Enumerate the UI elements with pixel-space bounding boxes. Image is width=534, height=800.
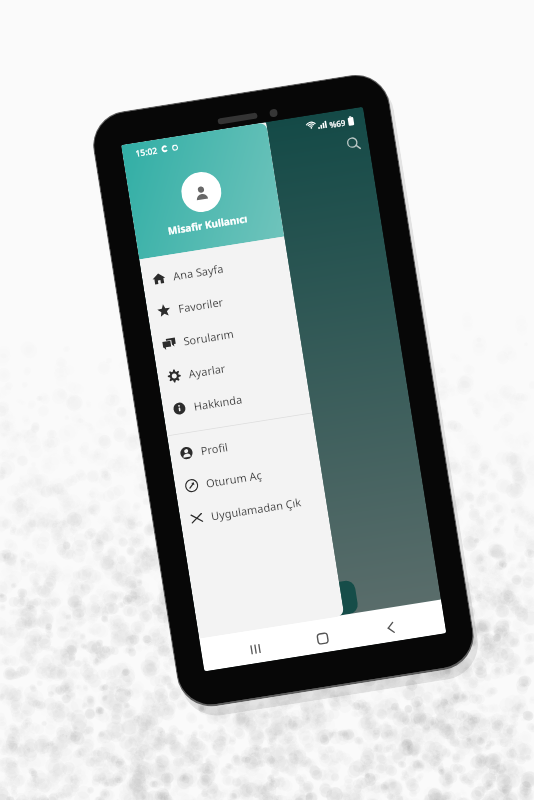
button[interactable]: Sorularım (150, 307, 301, 362)
staticText: 15:02 (135, 144, 158, 160)
button[interactable]: Oturum Aç (173, 449, 323, 504)
staticText: Misafir Kullanıcı (167, 211, 249, 238)
button[interactable]: Home (303, 619, 342, 655)
button[interactable]: Profil (168, 416, 318, 472)
staticText: Ayarlar (187, 360, 226, 381)
staticText: Hakkında (193, 391, 243, 414)
button[interactable]: Back (371, 608, 410, 644)
staticText: Sorularım (182, 326, 235, 349)
button[interactable]: Ayarlar (155, 339, 306, 395)
staticText: %69 (328, 117, 346, 130)
staticText: Uygulamadan Çık (210, 494, 302, 523)
button[interactable]: Hakkında (161, 372, 311, 427)
button[interactable]: Recent apps (236, 630, 274, 666)
button[interactable]: Uygulamadan Çık (178, 481, 328, 537)
staticText: Profil (200, 439, 230, 458)
button[interactable]: Search (340, 130, 367, 157)
staticText: Ana Sayfa (172, 261, 225, 283)
button[interactable]: Favoriler (145, 274, 295, 330)
staticText: Favoriler (177, 294, 225, 316)
button[interactable]: Ana Sayfa (140, 241, 290, 297)
staticText: Oturum Aç (205, 467, 263, 491)
